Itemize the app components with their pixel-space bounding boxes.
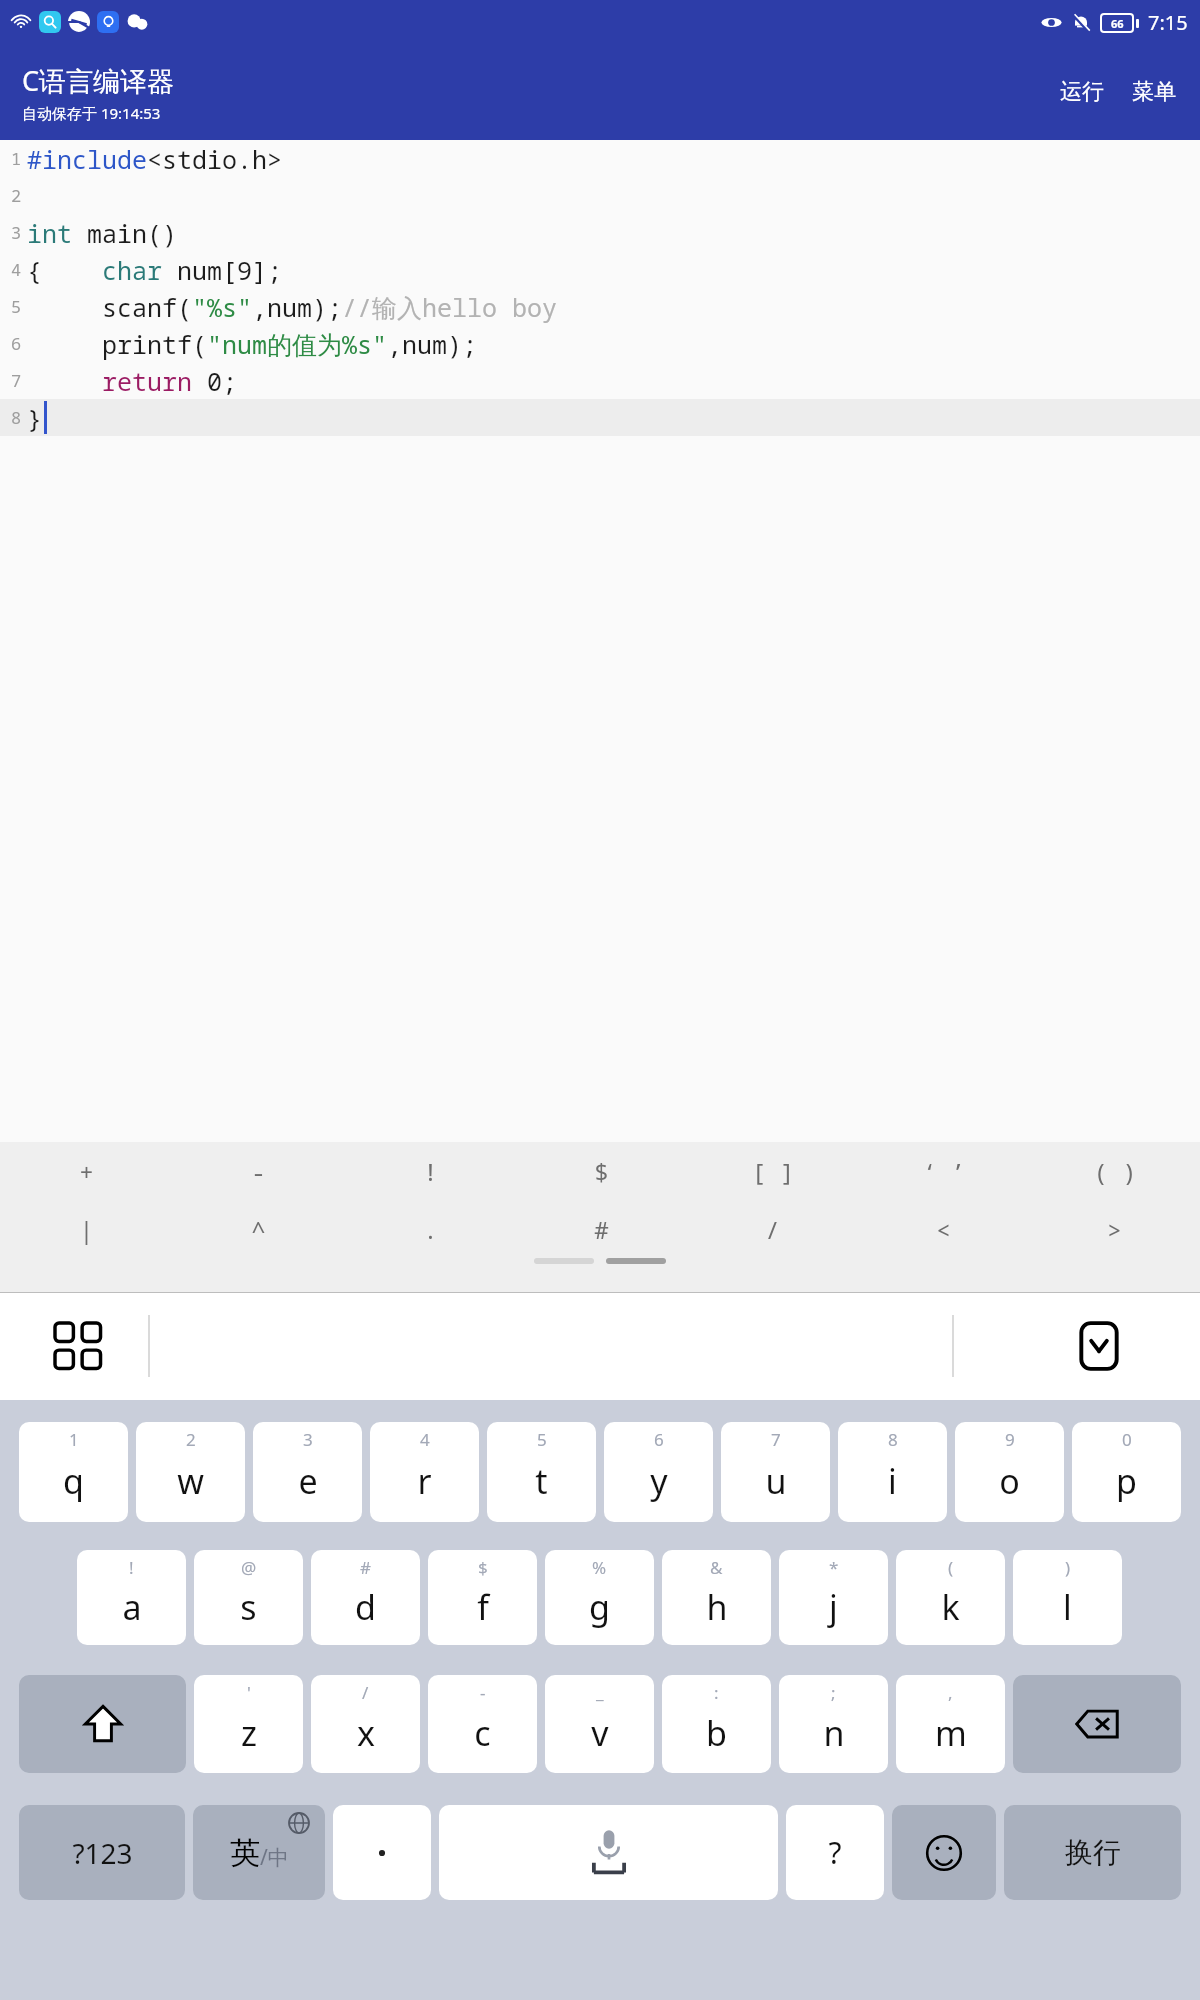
button[interactable]: 6 xyxy=(0,325,1200,362)
button[interactable]: / xyxy=(311,1675,420,1773)
button[interactable]: 换行 xyxy=(1004,1805,1181,1900)
button[interactable]: Shift xyxy=(19,1675,186,1773)
button[interactable]: * xyxy=(779,1550,888,1645)
button[interactable]: - xyxy=(172,1142,344,1200)
button[interactable]: ( xyxy=(896,1550,1005,1645)
button[interactable]: ?123 xyxy=(19,1805,185,1900)
button[interactable]: > xyxy=(1029,1200,1200,1258)
staticText: ? xyxy=(828,1832,842,1873)
button[interactable]: [ ] xyxy=(687,1142,858,1200)
button[interactable]: $ xyxy=(516,1142,687,1200)
staticText: $ xyxy=(594,1155,609,1188)
staticText: ! xyxy=(129,1556,134,1579)
staticText: 3 xyxy=(11,221,22,244)
button[interactable]: 7 xyxy=(0,362,1200,399)
button[interactable]: @ xyxy=(194,1550,303,1645)
button[interactable]: & xyxy=(662,1550,771,1645)
staticText: v xyxy=(591,1710,609,1756)
button[interactable]: 1 xyxy=(0,140,1200,177)
staticText: 4 xyxy=(420,1428,430,1451)
button[interactable]: ‘ ’ xyxy=(858,1142,1029,1200)
button[interactable]: ; xyxy=(779,1675,888,1773)
button[interactable]: / xyxy=(687,1200,858,1258)
button[interactable]: Switch language xyxy=(193,1805,325,1900)
staticText: /中 xyxy=(260,1843,289,1872)
staticText: u xyxy=(765,1458,787,1504)
staticText: t xyxy=(535,1458,548,1504)
staticText: ^ xyxy=(251,1213,266,1246)
staticText: 4 xyxy=(11,258,22,281)
button[interactable]: 4 xyxy=(370,1422,479,1522)
button[interactable]: 6 xyxy=(604,1422,713,1522)
button[interactable]: # xyxy=(516,1200,687,1258)
staticText: 菜单 xyxy=(1132,78,1176,106)
button[interactable]: Backspace xyxy=(1013,1675,1181,1773)
staticText: 8 xyxy=(888,1428,898,1451)
button[interactable]: 8 xyxy=(0,399,1200,436)
button[interactable]: : xyxy=(662,1675,771,1773)
button[interactable]: # xyxy=(311,1550,420,1645)
staticText: c xyxy=(474,1710,491,1756)
button[interactable]: 9 xyxy=(955,1422,1064,1522)
staticText: o xyxy=(999,1458,1020,1504)
button[interactable]: % xyxy=(545,1550,654,1645)
button[interactable]: ) xyxy=(1013,1550,1122,1645)
button[interactable]: + xyxy=(0,1142,172,1200)
staticText: ' xyxy=(247,1681,251,1704)
button[interactable]: _ xyxy=(545,1675,654,1773)
button[interactable]: ( ) xyxy=(1029,1142,1200,1200)
staticText: q xyxy=(63,1458,84,1504)
button[interactable]: ^ xyxy=(172,1200,344,1258)
staticText: ( ) xyxy=(1093,1155,1137,1188)
staticText: r xyxy=(417,1458,432,1504)
staticText: j xyxy=(829,1584,838,1630)
button[interactable]: 8 xyxy=(838,1422,947,1522)
button[interactable]: 5 xyxy=(0,288,1200,325)
button[interactable]: ! xyxy=(344,1142,516,1200)
button[interactable]: 2 xyxy=(136,1422,245,1522)
button[interactable]: , xyxy=(896,1675,1005,1773)
staticText: y xyxy=(650,1458,668,1504)
staticText: 5 xyxy=(537,1428,547,1451)
button[interactable] xyxy=(333,1805,431,1900)
staticText: 1 xyxy=(69,1428,79,1451)
button[interactable]: Hide keyboard xyxy=(1070,1317,1128,1375)
staticText: z xyxy=(241,1710,257,1756)
staticText: - xyxy=(480,1681,486,1704)
button[interactable]: ! xyxy=(77,1550,186,1645)
staticText: d xyxy=(355,1584,376,1630)
button[interactable]: Emoji xyxy=(892,1805,996,1900)
button[interactable]: 3 xyxy=(0,214,1200,251)
button[interactable]: | xyxy=(0,1200,172,1258)
staticText: g xyxy=(589,1584,610,1630)
staticText: 8 xyxy=(11,406,22,429)
staticText: 2 xyxy=(186,1428,196,1451)
staticText: , xyxy=(948,1681,953,1704)
staticText: b xyxy=(706,1710,727,1756)
button[interactable]: 4 xyxy=(0,251,1200,288)
staticText: _ xyxy=(596,1681,604,1704)
button[interactable]: < xyxy=(858,1200,1029,1258)
button[interactable]: ? xyxy=(786,1805,884,1900)
button[interactable]: 运行 xyxy=(1046,68,1118,116)
button[interactable]: 0 xyxy=(1072,1422,1181,1522)
button[interactable]: Space xyxy=(439,1805,778,1900)
button[interactable]: 1 xyxy=(19,1422,128,1522)
staticText: : xyxy=(714,1681,719,1704)
button[interactable]: . xyxy=(344,1200,516,1258)
staticText: 7:15 xyxy=(1148,9,1188,36)
staticText: { char num[9]; xyxy=(27,253,283,287)
button[interactable]: 3 xyxy=(253,1422,362,1522)
staticText: 6 xyxy=(654,1428,664,1451)
button[interactable]: Keyboard layouts xyxy=(52,1320,104,1372)
button[interactable]: 菜单 xyxy=(1118,68,1200,116)
button[interactable]: $ xyxy=(428,1550,537,1645)
staticText: ; xyxy=(831,1681,836,1704)
button[interactable]: ' xyxy=(194,1675,303,1773)
button[interactable]: 7 xyxy=(721,1422,830,1522)
staticText: 运行 xyxy=(1060,78,1104,106)
staticText: @ xyxy=(241,1556,257,1579)
button[interactable]: - xyxy=(428,1675,537,1773)
button[interactable]: 5 xyxy=(487,1422,596,1522)
